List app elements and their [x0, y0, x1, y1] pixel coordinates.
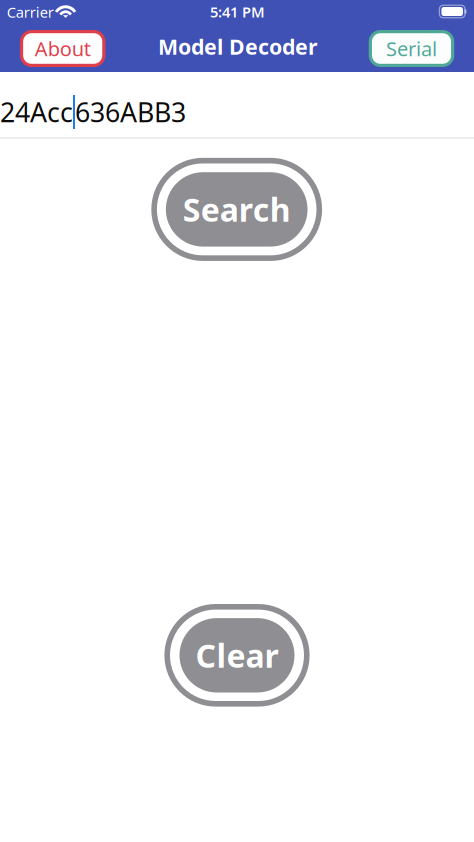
staticText: 5:41 PM	[210, 2, 265, 22]
staticText: Serial	[386, 35, 437, 62]
button[interactable]: Serial	[368, 29, 454, 67]
staticText: Model Decoder	[158, 32, 318, 61]
staticText: Carrier	[7, 2, 54, 22]
staticText: Search	[183, 188, 291, 231]
staticText: 636ABB3	[75, 94, 186, 130]
button[interactable]: About	[20, 29, 106, 67]
staticText: About	[35, 35, 91, 62]
button[interactable]: Clear	[163, 603, 311, 708]
staticText: 24Acc	[0, 94, 73, 130]
staticText: Clear	[195, 634, 278, 677]
button[interactable]: Search	[150, 157, 323, 262]
